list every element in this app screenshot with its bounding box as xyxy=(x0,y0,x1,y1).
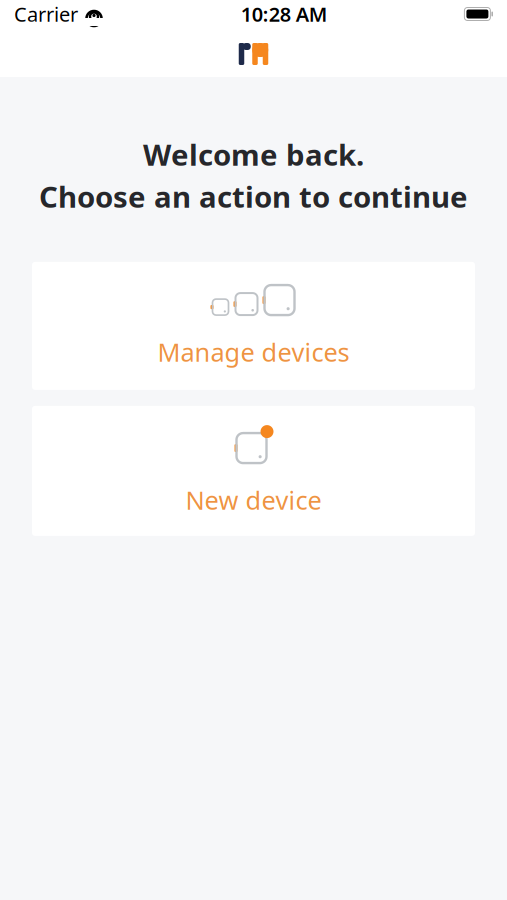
staticText: Manage devices xyxy=(157,335,349,369)
button[interactable]: New device xyxy=(32,406,475,536)
button[interactable]: Manage devices xyxy=(32,262,475,390)
staticText: Welcome back. xyxy=(143,135,364,174)
staticText: Choose an action to continue xyxy=(39,177,468,216)
staticText: New device xyxy=(185,483,321,517)
staticText: Carrier xyxy=(14,1,78,27)
staticText: 10:28 AM xyxy=(241,1,328,27)
